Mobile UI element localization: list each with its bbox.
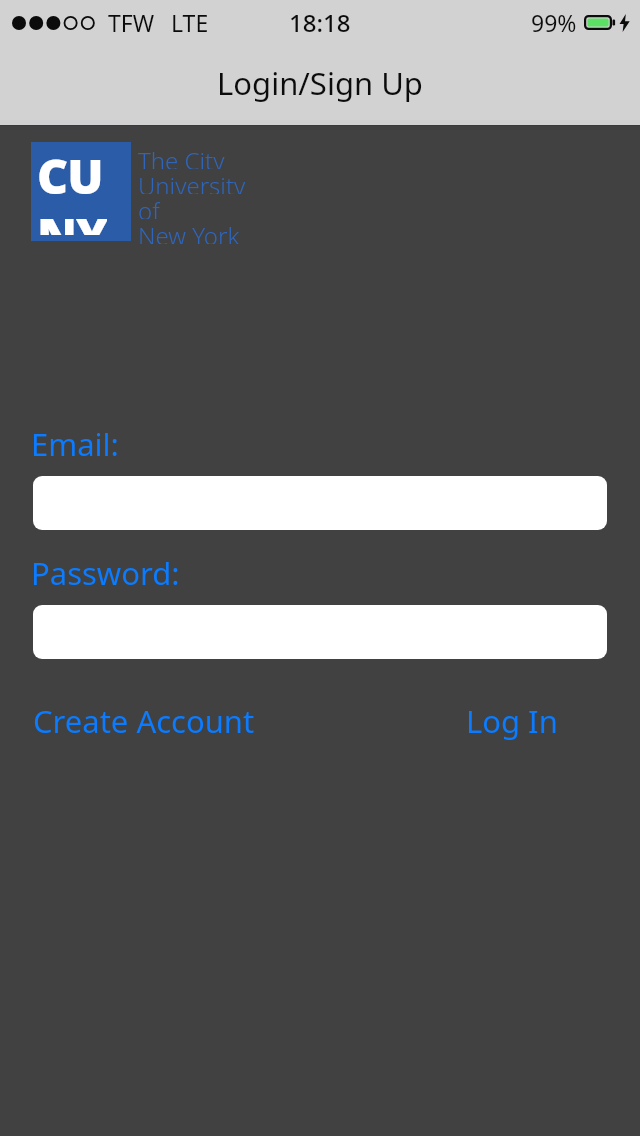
button[interactable]	[33, 476, 607, 530]
staticText: CU	[37, 143, 103, 208]
staticText: Create Account	[33, 700, 255, 742]
staticText: The City	[138, 144, 225, 169]
button[interactable]	[33, 605, 607, 659]
staticText: 99%	[531, 7, 577, 38]
staticText: LTE	[171, 7, 209, 38]
staticText: Login/Sign Up	[217, 62, 423, 104]
staticText: NY	[37, 202, 107, 235]
staticText: Log In	[466, 700, 558, 742]
button[interactable]: Log In	[466, 700, 558, 742]
staticText: Email:	[31, 423, 119, 465]
staticText: of	[138, 194, 160, 219]
staticText: 18:18	[289, 6, 351, 39]
staticText: Password:	[31, 552, 180, 594]
button[interactable]: Create Account	[33, 700, 255, 742]
staticText: New York	[138, 219, 240, 244]
staticText: TFW	[108, 7, 155, 38]
staticText: University	[138, 169, 246, 194]
